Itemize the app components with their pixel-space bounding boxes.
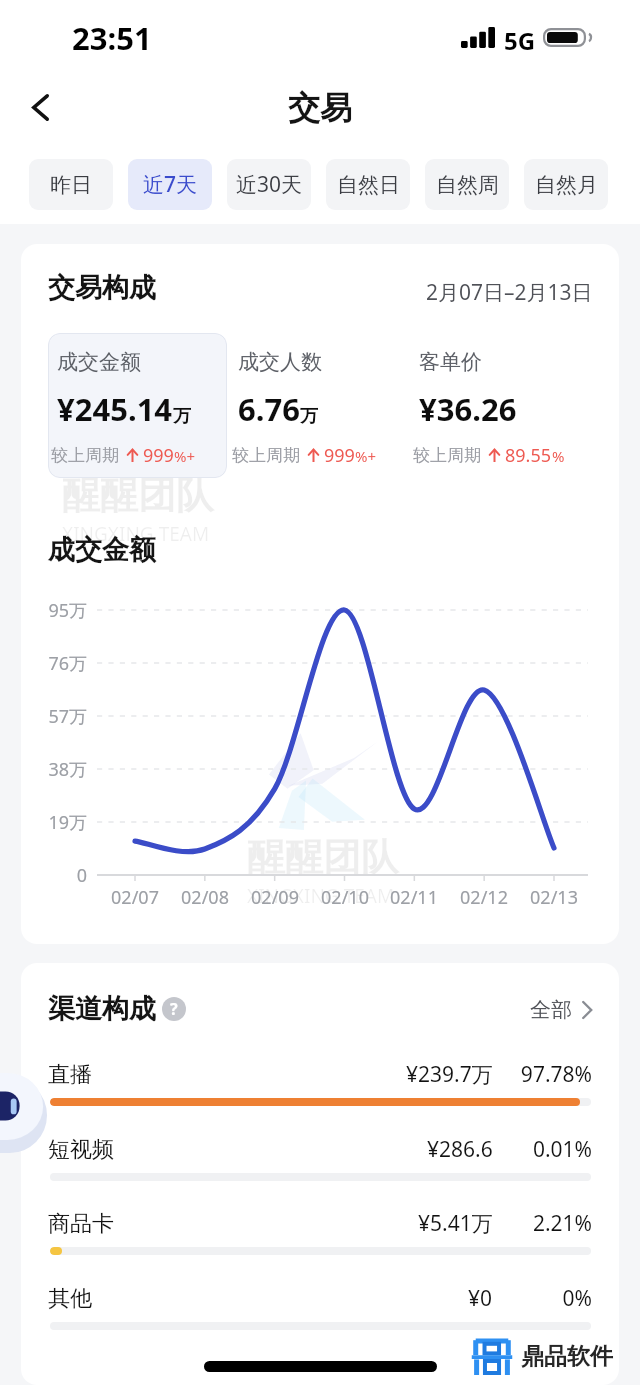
staticText: 其他: [48, 1285, 92, 1313]
staticText: 95万: [21, 598, 87, 623]
staticText: 短视频: [48, 1136, 114, 1164]
staticText: ¥286.6: [427, 1135, 493, 1164]
staticText: 0.01%: [514, 1135, 592, 1164]
staticText: ¥239.7万: [406, 1060, 493, 1089]
staticText: %+: [174, 446, 196, 466]
staticText: 自然周: [436, 172, 499, 198]
staticText: 2.21%: [514, 1209, 592, 1238]
staticText: 醒醒团队: [247, 833, 399, 881]
button[interactable]: Back: [13, 80, 67, 134]
staticText: 自然月: [535, 172, 598, 198]
staticText: 交易: [288, 88, 352, 128]
staticText: 较上周期: [413, 445, 481, 466]
staticText: 万: [173, 405, 191, 428]
button[interactable]: 自然周: [425, 159, 509, 210]
staticText: 成交金额: [57, 349, 141, 375]
button[interactable]: 商品卡: [21, 1200, 619, 1274]
staticText: 近7天: [143, 170, 198, 199]
button[interactable]: 成交金额: [48, 333, 227, 478]
staticText: 5G: [504, 24, 536, 57]
button[interactable]: Help: [162, 997, 186, 1021]
staticText: 商品卡: [48, 1210, 114, 1238]
staticText: 昨日: [50, 172, 92, 198]
staticText: ¥245.14: [57, 388, 173, 430]
staticText: 鼎品软件: [521, 1342, 613, 1371]
staticText: 02/09: [235, 885, 315, 910]
staticText: 交易构成: [48, 271, 156, 305]
staticText: 较上周期: [51, 445, 119, 466]
staticText: 2月07日–2月13日: [426, 278, 593, 307]
staticText: 0%: [514, 1284, 592, 1313]
staticText: 近30天: [236, 170, 303, 199]
button[interactable]: 近7天: [128, 159, 212, 210]
staticText: 02/13: [514, 885, 594, 910]
staticText: ?: [170, 998, 178, 1020]
staticText: 直播: [48, 1061, 92, 1089]
staticText: 76万: [21, 651, 87, 676]
staticText: 23:51: [72, 17, 152, 59]
staticText: ¥0: [468, 1284, 493, 1313]
staticText: XINGXING TEAM: [62, 521, 210, 547]
staticText: 999: [324, 443, 355, 468]
staticText: 38万: [21, 757, 87, 782]
staticText: 成交人数: [238, 349, 322, 375]
staticText: 19万: [21, 810, 87, 835]
staticText: 0: [21, 863, 87, 888]
staticText: 02/07: [95, 885, 175, 910]
staticText: 57万: [21, 704, 87, 729]
button[interactable]: 近30天: [227, 159, 311, 210]
staticText: 成交金额: [48, 533, 156, 567]
button[interactable]: 其他: [21, 1275, 619, 1349]
staticText: 醒醒团队: [62, 471, 214, 519]
staticText: 02/08: [165, 885, 245, 910]
button[interactable]: 成交人数: [229, 333, 408, 478]
staticText: 02/12: [444, 885, 524, 910]
staticText: 02/11: [374, 885, 454, 910]
staticText: 客单价: [419, 349, 482, 375]
staticText: %: [552, 446, 565, 466]
staticText: ¥5.41万: [418, 1209, 493, 1238]
button[interactable]: 直播: [21, 1051, 619, 1125]
staticText: 万: [300, 405, 318, 428]
staticText: 02/10: [305, 885, 385, 910]
button[interactable]: 短视频: [21, 1126, 619, 1200]
button[interactable]: 客单价: [410, 333, 589, 478]
staticText: 97.78%: [514, 1060, 592, 1089]
staticText: 较上周期: [232, 445, 300, 466]
staticText: 全部: [530, 997, 572, 1023]
staticText: 6.76: [238, 388, 300, 430]
staticText: %+: [355, 446, 377, 466]
staticText: ¥36.26: [419, 388, 517, 430]
button[interactable]: 昨日: [29, 159, 113, 210]
button[interactable]: 全部: [530, 997, 592, 1023]
staticText: 渠道构成: [48, 992, 156, 1026]
staticText: 自然日: [337, 172, 400, 198]
button[interactable]: 自然日: [326, 159, 410, 210]
staticText: XINGXING TEAM: [247, 883, 395, 909]
staticText: 89.55: [505, 443, 552, 468]
staticText: 999: [143, 443, 174, 468]
button[interactable]: 自然月: [524, 159, 608, 210]
